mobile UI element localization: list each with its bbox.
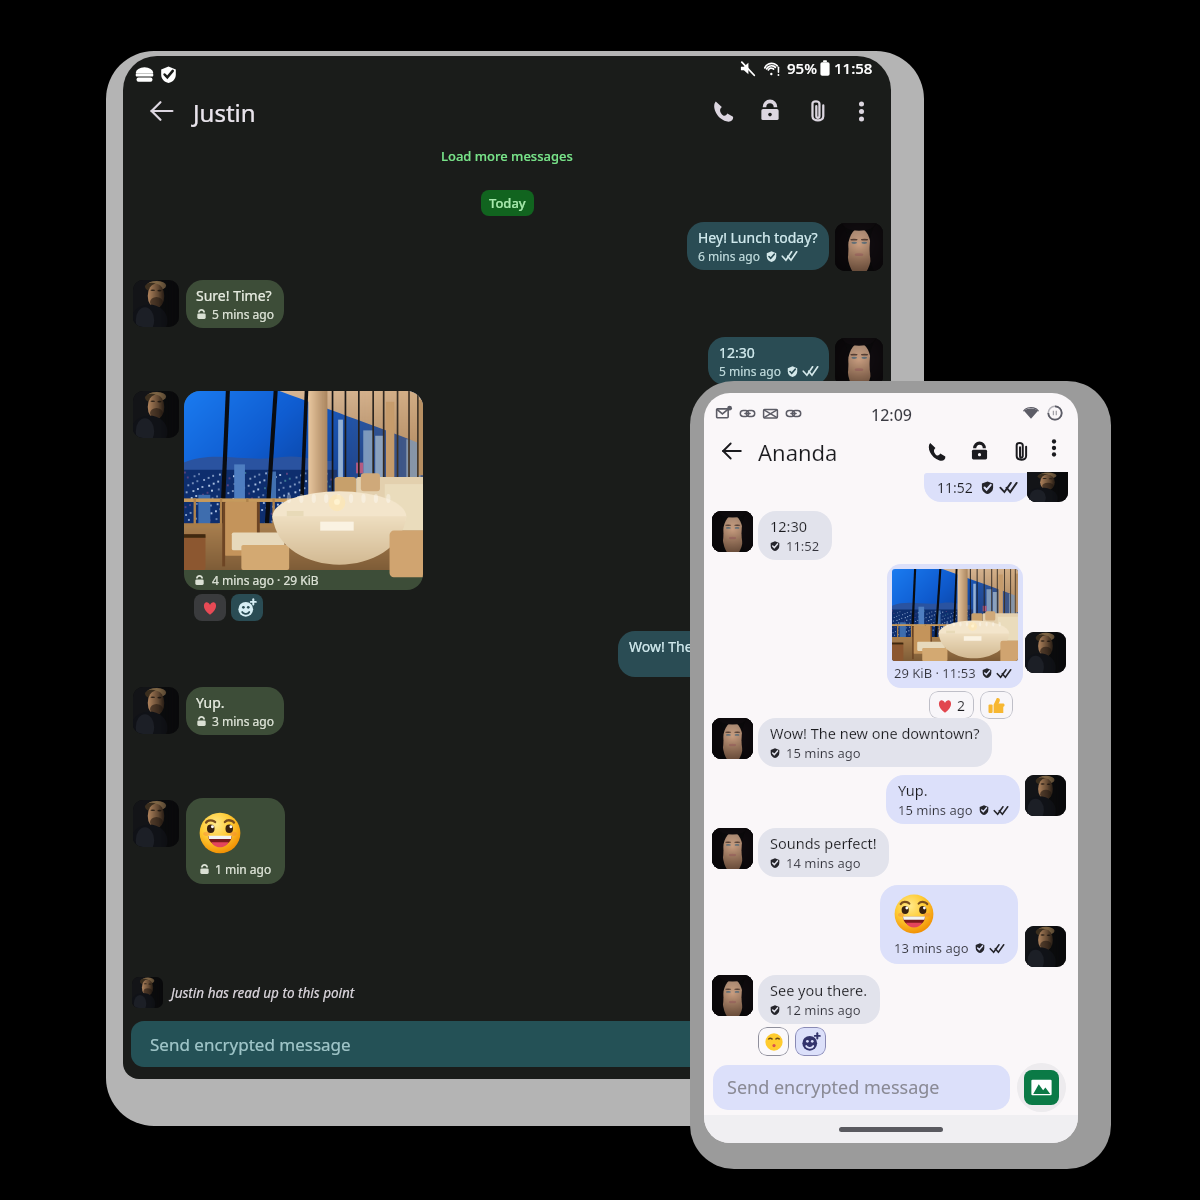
staticText: 11:52 [937, 478, 973, 497]
staticText: Wow! The new one downtown? [770, 723, 980, 743]
button[interactable]: Load more messages [435, 144, 579, 168]
staticText: 1 min ago [215, 861, 272, 877]
button[interactable]: Send image [1017, 1063, 1066, 1112]
staticText: 12:30 [770, 516, 808, 536]
staticText: 5 mins ago [212, 306, 274, 322]
button[interactable]: Call [701, 89, 745, 133]
button[interactable]: 2 [929, 691, 974, 719]
staticText: 2 [957, 696, 966, 715]
staticText: Sounds perfect! [770, 833, 877, 853]
staticText: Justin [193, 96, 256, 129]
button[interactable]: 29 KiB · 11:53 [887, 564, 1023, 688]
button[interactable]: More options [839, 89, 883, 133]
button[interactable]: Hey! Lunch today? [687, 222, 829, 270]
button[interactable]: 12:30 [708, 337, 829, 385]
staticText: 13 mins ago [894, 939, 969, 957]
staticText: Send encrypted message [150, 1033, 351, 1056]
staticText: 5 mins ago [719, 363, 781, 379]
staticText: Yup. [196, 693, 225, 712]
staticText: 15 mins ago [786, 744, 861, 762]
button[interactable]: Back [140, 89, 184, 133]
staticText: Yup. [898, 780, 928, 800]
button[interactable]: Thumbs up [980, 691, 1013, 719]
button[interactable]: Call [916, 431, 956, 471]
staticText: 3 mins ago [212, 713, 274, 729]
button[interactable]: Justin [193, 96, 256, 129]
button[interactable]: 1 min ago [186, 798, 285, 884]
button[interactable]: Yup. [186, 687, 284, 735]
button[interactable]: Attach [796, 89, 840, 133]
button[interactable]: Sure! Time? [186, 280, 284, 328]
button[interactable]: 4 mins ago · 29 KiB [184, 391, 423, 590]
button[interactable]: Wow! The new one downtown? [758, 718, 992, 767]
button[interactable]: See you there. [758, 975, 880, 1024]
button[interactable]: Ananda [758, 437, 838, 467]
button[interactable]: Encryption [748, 89, 792, 133]
button[interactable]: Send encrypted message [131, 1021, 883, 1067]
button[interactable]: Encryption [959, 431, 999, 471]
button[interactable]: Add reaction [231, 594, 263, 621]
staticText: 4 mins ago · 29 KiB [212, 572, 319, 588]
staticText: Ananda [758, 437, 838, 467]
button[interactable]: 11:52 [924, 473, 1030, 502]
staticText: 11:52 [786, 537, 820, 555]
button[interactable]: Add reaction [795, 1027, 826, 1056]
button[interactable]: More options [1037, 431, 1071, 465]
staticText: Hey! Lunch today? [698, 228, 818, 247]
staticText: Justin has read up to this point [171, 984, 355, 1002]
button[interactable]: Attach [1001, 431, 1041, 471]
staticText: 6 mins ago [698, 248, 760, 264]
button[interactable]: 12:30 [758, 511, 832, 560]
staticText: 15 mins ago [898, 801, 973, 819]
button[interactable]: Back [712, 431, 752, 471]
staticText: 14 mins ago [786, 854, 861, 872]
button[interactable]: Heart reaction [194, 594, 226, 621]
staticText: Wow! The new one downtown? [629, 637, 832, 656]
staticText: Send encrypted message [727, 1075, 940, 1100]
button[interactable]: Wow! The new one downtown? [618, 631, 891, 677]
staticText: Sure! Time? [196, 286, 272, 305]
button[interactable]: Send encrypted message [713, 1065, 1010, 1110]
staticText: 12:30 [719, 343, 755, 362]
button[interactable]: Kiss reaction [758, 1027, 789, 1056]
staticText: 12:09 [871, 404, 912, 426]
staticText: Today [489, 194, 526, 212]
staticText: 12 mins ago [786, 1001, 861, 1019]
staticText: Load more messages [441, 147, 573, 165]
staticText: 11:58 [834, 58, 873, 78]
button[interactable]: Today [481, 190, 534, 216]
button[interactable]: 13 mins ago [880, 885, 1018, 964]
staticText: 29 KiB · 11:53 [894, 664, 976, 682]
button[interactable]: Yup. [886, 775, 1020, 824]
staticText: See you there. [770, 980, 868, 1000]
staticText: 95% [787, 58, 817, 78]
button[interactable]: Sounds perfect! [758, 828, 889, 877]
